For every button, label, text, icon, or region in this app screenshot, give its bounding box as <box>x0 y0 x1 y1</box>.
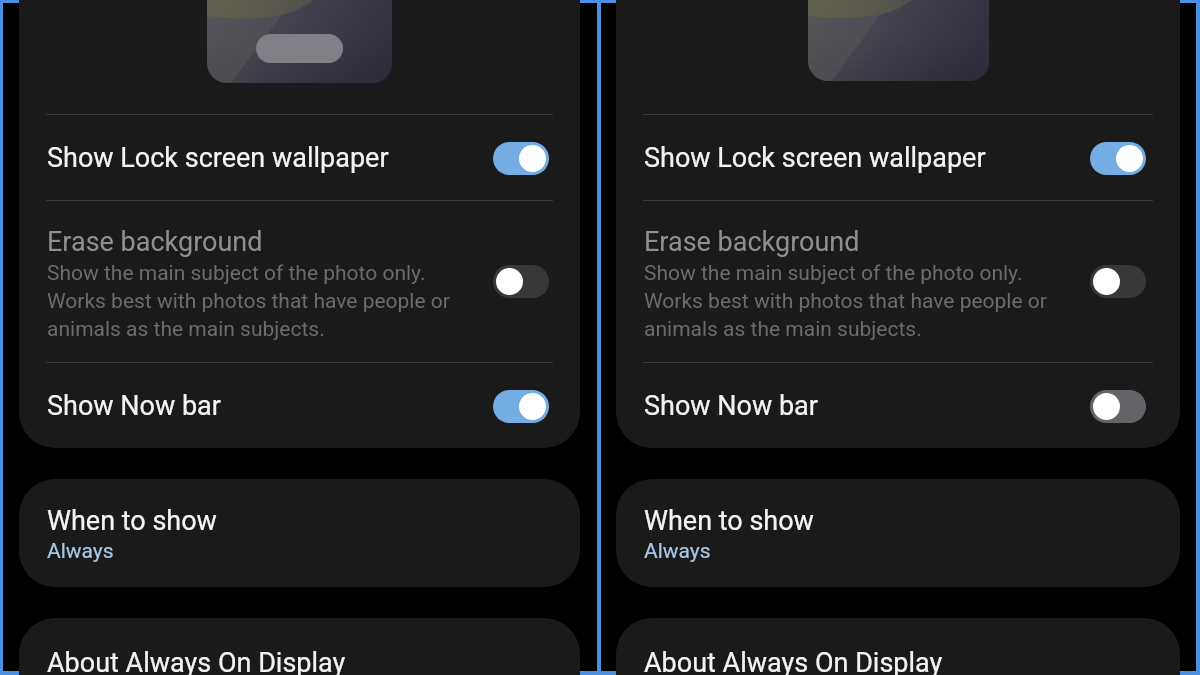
button[interactable]: Erase background <box>19 201 580 362</box>
button[interactable]: Erase background <box>616 201 1180 362</box>
staticText: Show Now bar <box>644 390 1090 422</box>
button[interactable]: Switch off <box>1090 390 1146 423</box>
button[interactable]: Switch off <box>493 265 549 298</box>
staticText: Show Now bar <box>47 390 493 422</box>
staticText: About Always On Display <box>644 647 943 675</box>
staticText: Erase background <box>644 226 860 258</box>
button[interactable]: Show Now bar <box>19 364 580 448</box>
button[interactable]: Switch off <box>1090 265 1146 298</box>
staticText: Show the main subject of the photo only.… <box>644 261 1047 341</box>
button[interactable]: Show Lock screen wallpaper <box>19 115 580 201</box>
staticText: Show Lock screen wallpaper <box>47 142 493 174</box>
staticText: When to show <box>47 505 217 537</box>
staticText: Show the main subject of the photo only.… <box>47 261 450 341</box>
staticText: Show Lock screen wallpaper <box>644 142 1090 174</box>
staticText: Always <box>644 539 711 564</box>
button[interactable]: When to show <box>616 479 1180 587</box>
staticText: When to show <box>644 505 814 537</box>
button[interactable]: Switch on <box>493 390 549 423</box>
staticText: Erase background <box>47 226 263 258</box>
staticText: About Always On Display <box>47 647 346 675</box>
button[interactable]: Show Lock screen wallpaper <box>616 115 1180 201</box>
button[interactable]: Switch on <box>493 142 549 175</box>
button[interactable]: About Always On Display <box>616 618 1180 675</box>
button[interactable]: About Always On Display <box>19 618 580 675</box>
staticText: Always <box>47 539 114 564</box>
button[interactable]: When to show <box>19 479 580 587</box>
button[interactable]: Switch on <box>1090 142 1146 175</box>
button[interactable]: Show Now bar <box>616 364 1180 448</box>
